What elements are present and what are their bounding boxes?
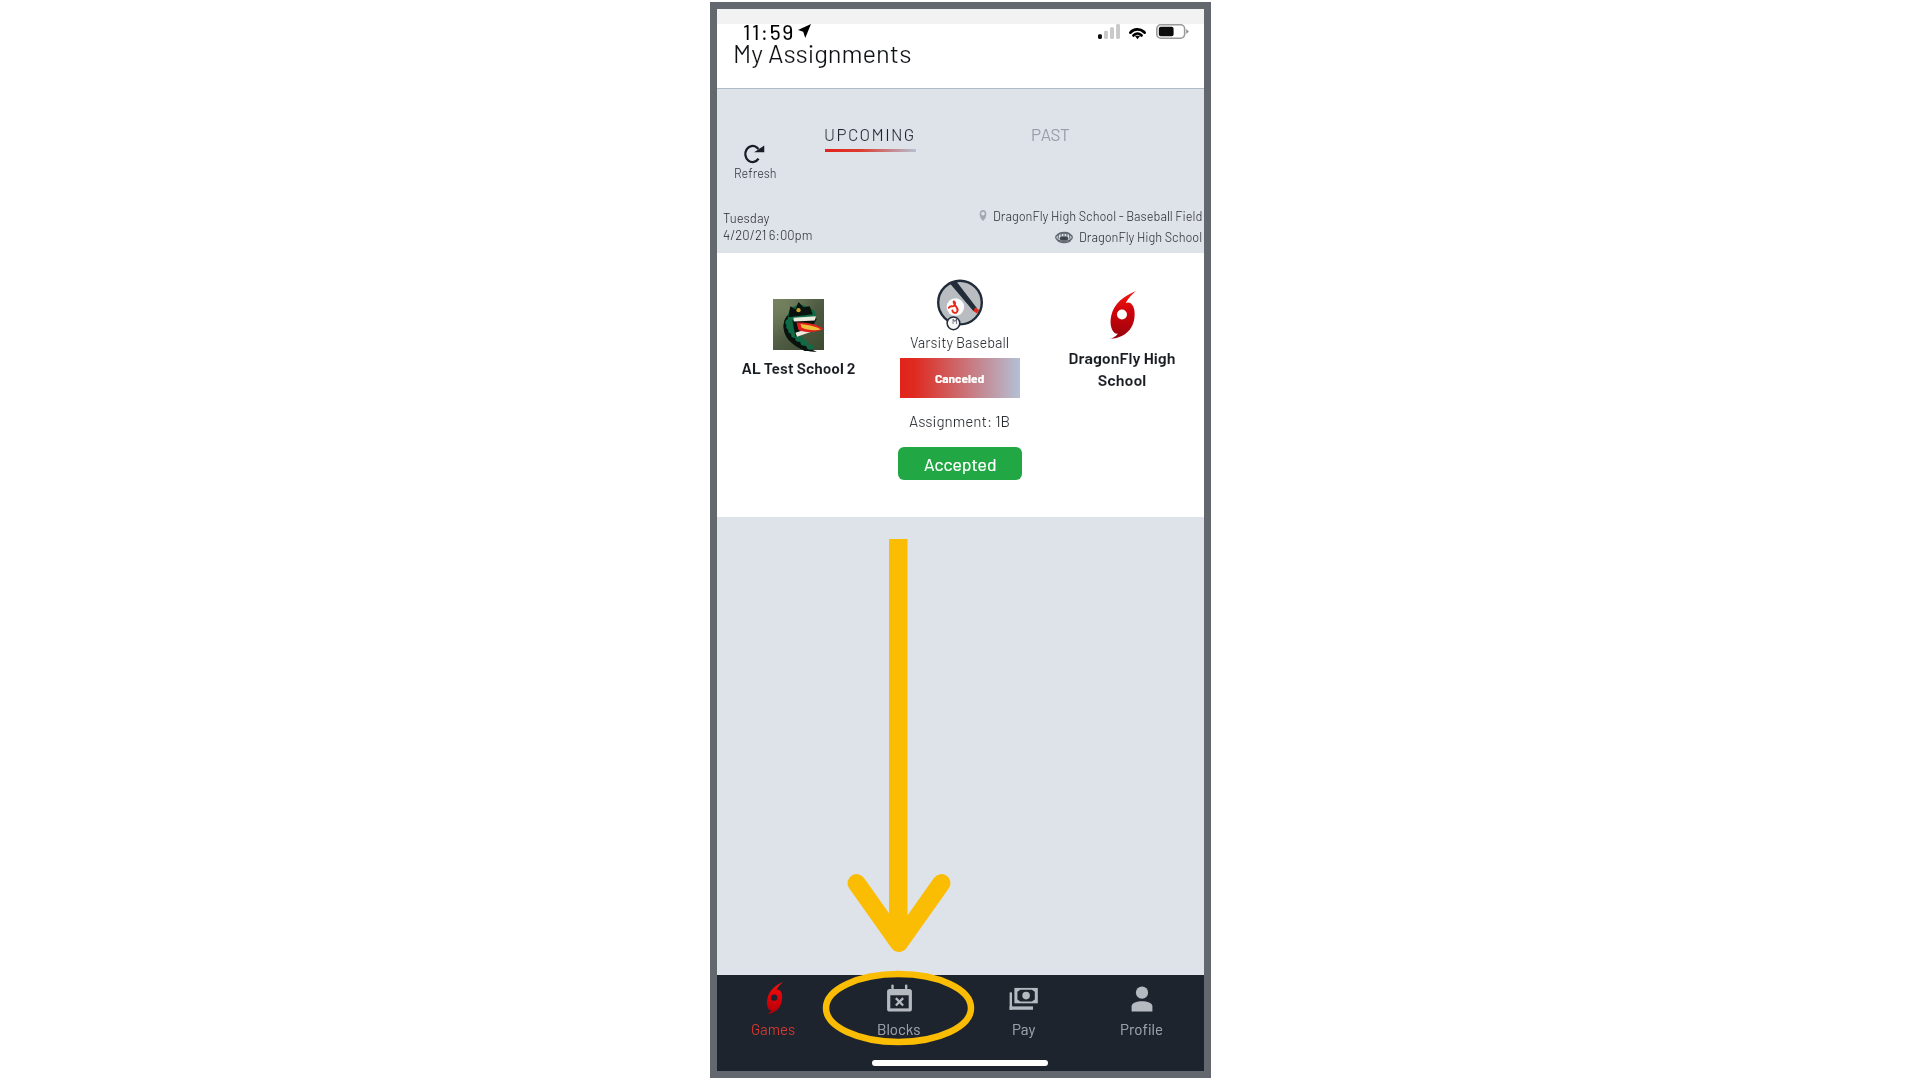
staticText: Assignment: 1B [909, 412, 1011, 430]
staticText: Tuesday [723, 210, 770, 226]
staticText: 4/20/21 6:00pm [723, 227, 813, 243]
staticText: DragonFly High School - Baseball Field [993, 208, 1203, 223]
button[interactable]: PAST [1005, 124, 1096, 144]
button[interactable]: UPCOMING [824, 124, 916, 152]
staticText: Pay [1012, 1020, 1036, 1038]
other: Pay [1009, 984, 1039, 1012]
other: Blocks [886, 984, 913, 1013]
button[interactable]: Refresh [725, 145, 785, 180]
other: Profile [1129, 984, 1155, 1012]
staticText: DragonFly High School [1079, 229, 1203, 244]
staticText: Varsity Baseball [910, 333, 1010, 350]
staticText: My Assignments [733, 37, 912, 68]
other: Games [766, 982, 783, 1014]
staticText: Blocks [877, 1020, 921, 1038]
staticText: Profile [1120, 1020, 1164, 1038]
button[interactable]: Blocks [836, 981, 961, 1038]
staticText: Canceled [935, 371, 985, 385]
button[interactable]: Pay [961, 981, 1086, 1038]
staticText: Games [751, 1020, 796, 1038]
staticText: AL Test School 2 [741, 358, 856, 377]
staticText: 11:59 [743, 19, 795, 44]
staticText: UPCOMING [824, 124, 916, 144]
staticText: M [952, 316, 958, 326]
staticText: Refresh [734, 165, 777, 180]
button[interactable]: Accepted [898, 447, 1022, 480]
button[interactable]: Games [711, 981, 836, 1038]
staticText: PAST [1031, 124, 1070, 144]
button[interactable]: Profile [1086, 981, 1198, 1038]
staticText: DragonFly High School [1044, 348, 1200, 389]
staticText: Accepted [924, 453, 997, 474]
